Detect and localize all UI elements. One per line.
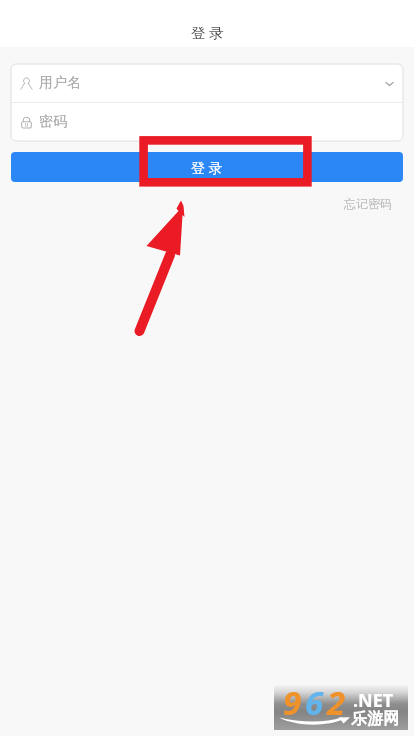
staticText: 忘记密码 (344, 196, 392, 211)
staticText: 乐游网 (351, 709, 399, 729)
staticText: 9 (283, 680, 302, 725)
staticText: 用户名 (39, 74, 81, 92)
staticText: 登 录 (191, 158, 223, 177)
button[interactable]: 登 录 (11, 152, 403, 182)
staticText: 登 录 (191, 22, 224, 42)
staticText: 2 (327, 680, 346, 725)
button[interactable]: 用户名 (11, 64, 403, 102)
staticText: 6 (305, 680, 324, 725)
button[interactable]: 忘记密码 (338, 194, 398, 213)
other: Expand account list (384, 78, 395, 89)
button[interactable]: 密码 (11, 103, 403, 141)
staticText: .NET (353, 688, 394, 713)
staticText: 密码 (39, 113, 67, 131)
